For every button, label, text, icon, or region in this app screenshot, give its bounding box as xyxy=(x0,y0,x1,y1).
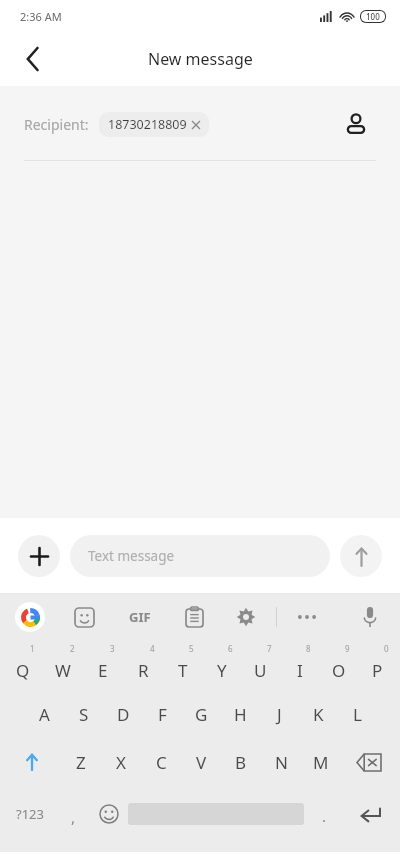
staticText: Text message xyxy=(88,547,175,565)
staticText: W xyxy=(55,659,71,682)
staticText: L xyxy=(353,703,362,726)
button[interactable]: C xyxy=(141,738,181,786)
button[interactable]: X xyxy=(101,738,141,786)
button[interactable]: More options xyxy=(287,597,327,637)
staticText: 1 xyxy=(30,643,35,654)
staticText: D xyxy=(117,703,130,726)
staticText: 3 xyxy=(110,643,115,654)
button[interactable]: 9 xyxy=(319,641,358,689)
staticText: I xyxy=(297,659,303,682)
staticText: F xyxy=(158,703,167,726)
staticText: 18730218809 xyxy=(108,116,187,133)
button[interactable]: V xyxy=(181,738,221,786)
staticText: R xyxy=(138,659,149,682)
button[interactable]: Recipient: xyxy=(24,112,336,137)
staticText: E xyxy=(98,659,108,682)
staticText: T xyxy=(178,659,188,682)
staticText: 7 xyxy=(267,643,272,654)
button[interactable]: 0 xyxy=(358,641,397,689)
staticText: P xyxy=(372,659,383,682)
staticText: M xyxy=(313,751,329,774)
button[interactable]: H xyxy=(221,690,260,738)
staticText: X xyxy=(116,751,126,774)
button[interactable]: M xyxy=(301,738,341,786)
button[interactable]: GIF xyxy=(118,595,162,639)
button[interactable]: 8 xyxy=(280,641,319,689)
staticText: New message xyxy=(148,48,253,70)
button[interactable]: Clipboard xyxy=(174,597,214,637)
button[interactable]: J xyxy=(260,690,299,738)
button[interactable]: B xyxy=(221,738,261,786)
button[interactable]: 5 xyxy=(163,641,202,689)
button[interactable]: Stickers xyxy=(64,597,104,637)
button[interactable]: Space xyxy=(128,790,304,838)
staticText: Y xyxy=(217,659,227,682)
button[interactable]: G xyxy=(182,690,221,738)
staticText: N xyxy=(275,751,288,774)
staticText: C xyxy=(156,751,167,774)
staticText: 2 xyxy=(70,643,75,654)
staticText: 8 xyxy=(306,643,311,654)
button[interactable]: N xyxy=(261,738,301,786)
staticText: GIF xyxy=(129,608,151,626)
staticText: S xyxy=(79,703,89,726)
button[interactable]: Back xyxy=(12,38,54,80)
staticText: 0 xyxy=(384,643,389,654)
button[interactable]: Send xyxy=(340,535,382,577)
button[interactable]: D xyxy=(104,690,143,738)
button[interactable]: 6 xyxy=(202,641,241,689)
staticText: 100 xyxy=(366,11,380,22)
staticText: O xyxy=(332,659,346,682)
button[interactable]: 7 xyxy=(241,641,280,689)
staticText: ?123 xyxy=(16,805,44,823)
button[interactable]: K xyxy=(299,690,338,738)
staticText: 5 xyxy=(189,643,194,654)
staticText: 9 xyxy=(345,643,350,654)
staticText: 2:36 AM xyxy=(20,9,62,24)
staticText: Recipient: xyxy=(24,115,89,134)
button[interactable]: Choose contact xyxy=(336,104,376,144)
button[interactable]: Settings xyxy=(226,597,266,637)
button[interactable]: 1 xyxy=(3,641,43,689)
staticText: G xyxy=(195,703,208,726)
staticText: J xyxy=(277,703,282,726)
button[interactable]: Add attachment xyxy=(18,535,60,577)
button[interactable]: Backspace xyxy=(341,738,397,786)
button[interactable]: ?123 xyxy=(4,790,56,838)
button[interactable]: F xyxy=(143,690,182,738)
button[interactable]: 2 xyxy=(43,641,83,689)
staticText: K xyxy=(313,703,324,726)
staticText: B xyxy=(235,751,247,774)
staticText: . xyxy=(322,806,327,826)
button[interactable]: , xyxy=(56,790,90,838)
button[interactable]: S xyxy=(64,690,104,738)
button[interactable]: A xyxy=(24,690,64,738)
button[interactable]: Enter xyxy=(344,790,396,838)
button[interactable]: 4 xyxy=(123,641,163,689)
staticText: V xyxy=(196,751,207,774)
staticText: 6 xyxy=(228,643,233,654)
button[interactable]: Voice input xyxy=(350,597,390,637)
button[interactable]: Text message xyxy=(70,535,330,577)
staticText: , xyxy=(71,807,76,827)
staticText: U xyxy=(254,659,267,682)
button[interactable]: Shift xyxy=(3,738,60,786)
staticText: Q xyxy=(16,659,30,682)
staticText: 4 xyxy=(150,643,155,654)
button[interactable]: L xyxy=(338,690,377,738)
button[interactable]: 3 xyxy=(83,641,123,689)
staticText: Z xyxy=(76,751,86,774)
staticText: A xyxy=(39,703,50,726)
button[interactable]: Z xyxy=(60,738,101,786)
staticText: H xyxy=(234,703,247,726)
button[interactable]: Emoji xyxy=(90,790,128,838)
button[interactable]: Google xyxy=(10,597,50,637)
button[interactable]: . xyxy=(304,790,344,838)
